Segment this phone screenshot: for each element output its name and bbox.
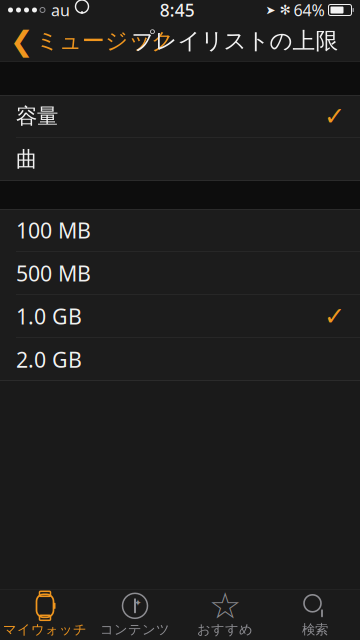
button[interactable]: 検索 — [270, 589, 360, 640]
staticText: au — [51, 0, 70, 21]
staticText: 1.0 GB — [16, 302, 82, 330]
button[interactable]: マイウォッチ — [0, 589, 90, 640]
staticText: 500 MB — [16, 259, 91, 287]
button[interactable]: 容量 — [0, 95, 360, 138]
staticText: 2.0 GB — [16, 345, 82, 374]
button[interactable]: 100 MB — [0, 209, 360, 252]
button[interactable]: ❮ — [0, 20, 182, 62]
staticText: ✦ — [134, 597, 142, 608]
staticText: プレイリストの上限 — [131, 27, 338, 55]
staticText: ミュージック — [36, 27, 174, 55]
staticText: 64% — [293, 0, 324, 21]
staticText: ✓ — [324, 102, 345, 131]
button[interactable]: 1.0 GB — [0, 295, 360, 338]
staticText: ✻ — [279, 2, 290, 17]
button[interactable]: ✦ — [90, 589, 180, 640]
staticText: コンテンツ — [100, 621, 170, 638]
button[interactable]: 500 MB — [0, 252, 360, 295]
staticText: ➤ — [265, 3, 275, 17]
staticText: ☆ — [209, 585, 241, 626]
staticText: 曲 — [16, 146, 37, 173]
staticText: 容量 — [16, 103, 58, 129]
button[interactable]: ☆ — [180, 589, 270, 640]
staticText: 100 MB — [16, 216, 91, 244]
button[interactable]: 2.0 GB — [0, 338, 360, 381]
button[interactable]: 曲 — [0, 138, 360, 181]
staticText: マイウォッチ — [3, 621, 87, 638]
staticText: 検索 — [302, 621, 328, 638]
staticText: おすすめ — [197, 621, 253, 638]
staticText: ✓ — [324, 302, 345, 331]
staticText: ❮ — [10, 25, 33, 57]
staticText: 8:45 — [160, 0, 195, 21]
